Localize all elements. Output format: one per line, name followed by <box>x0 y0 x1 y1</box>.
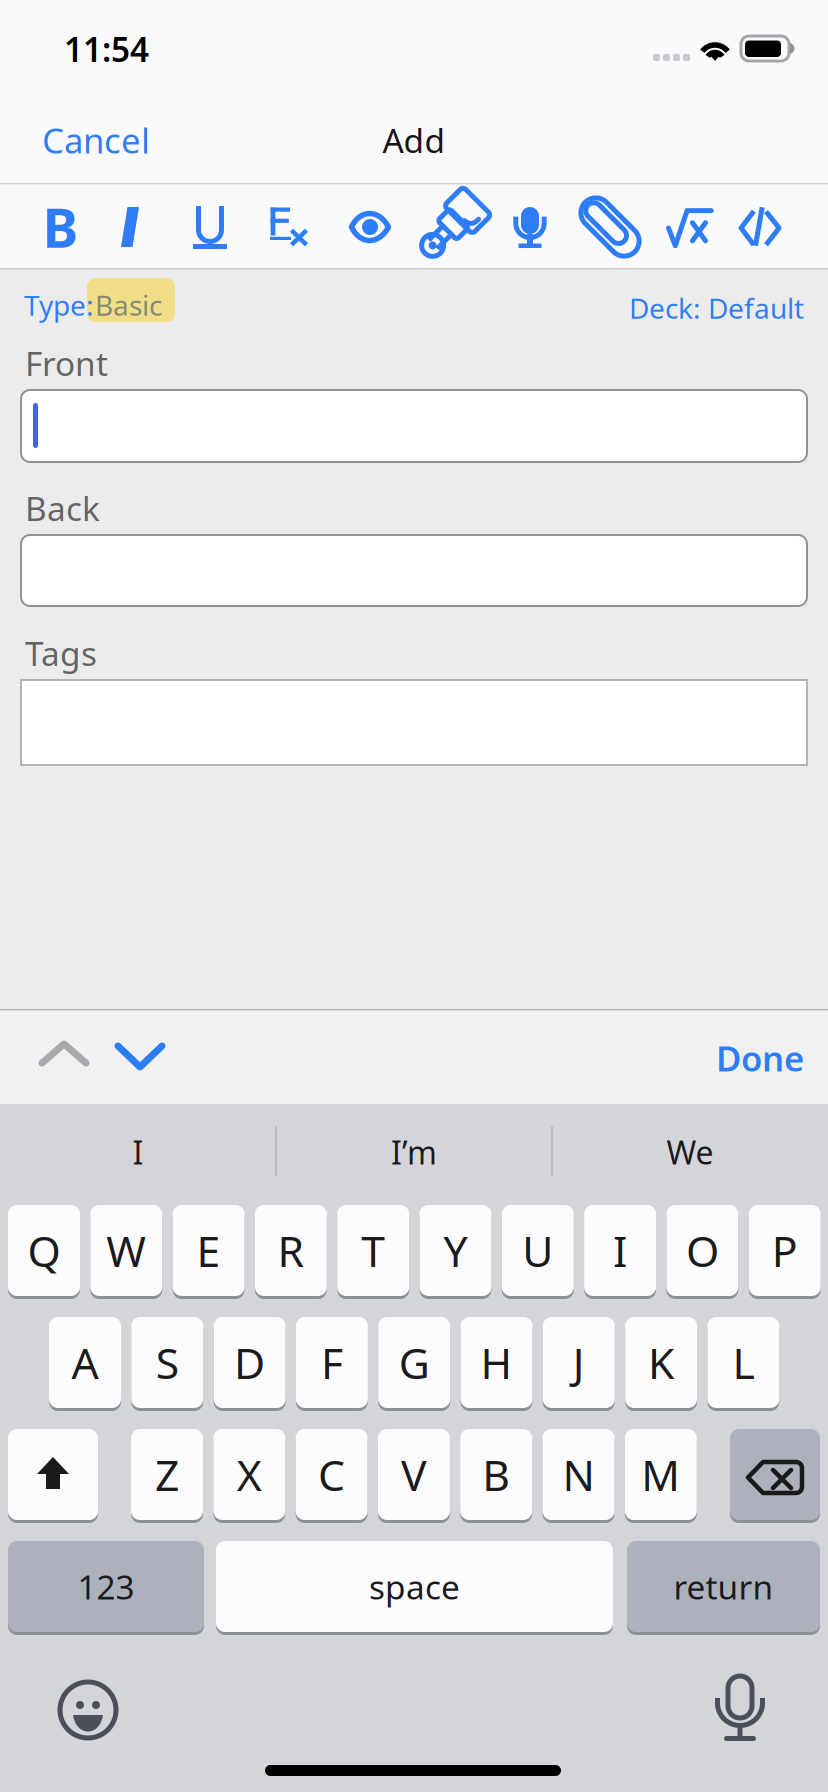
staticText: K <box>648 1334 674 1391</box>
staticText: 123 <box>77 1564 134 1609</box>
button[interactable]: S <box>131 1317 203 1411</box>
staticText: I <box>132 1131 143 1173</box>
staticText: J <box>573 1334 585 1391</box>
staticText: We <box>666 1131 713 1173</box>
button[interactable]: Y <box>419 1205 491 1299</box>
staticText: I <box>613 1222 627 1279</box>
staticText: M <box>641 1446 680 1503</box>
staticText: E <box>197 1222 221 1279</box>
button[interactable]: I <box>0 1118 276 1186</box>
button[interactable]: A <box>49 1317 121 1411</box>
staticText: L <box>732 1334 754 1391</box>
button[interactable]: Type: <box>24 277 184 323</box>
staticText: W <box>106 1222 146 1279</box>
staticText: A <box>71 1334 98 1391</box>
staticText: Add <box>382 118 445 162</box>
button[interactable]: Space <box>216 1541 613 1635</box>
staticText: Back <box>25 486 100 530</box>
staticText: Done <box>716 1035 804 1081</box>
button[interactable]: D <box>214 1317 286 1411</box>
button[interactable]: B <box>460 1429 532 1523</box>
staticText: return <box>673 1564 773 1609</box>
button[interactable]: W <box>90 1205 162 1299</box>
button[interactable]: Previous field <box>36 1032 92 1082</box>
button[interactable]: Bold <box>20 186 100 268</box>
button[interactable]: E <box>173 1205 245 1299</box>
button[interactable]: Preview <box>330 186 410 268</box>
staticText: O <box>686 1222 719 1279</box>
button[interactable]: O <box>666 1205 738 1299</box>
staticText: C <box>318 1446 345 1503</box>
button[interactable]: J <box>543 1317 615 1411</box>
button[interactable]: Underline <box>170 186 250 268</box>
button[interactable]: T <box>337 1205 409 1299</box>
staticText: R <box>277 1222 304 1279</box>
staticText: Y <box>443 1222 467 1279</box>
staticText: X <box>237 1446 262 1503</box>
staticText: Q <box>27 1222 60 1279</box>
button[interactable]: Italic <box>90 186 170 268</box>
staticText: N <box>562 1446 594 1503</box>
button[interactable]: We <box>552 1118 828 1186</box>
staticText: Basic <box>95 286 162 324</box>
staticText: D <box>234 1334 265 1391</box>
staticText: Type: <box>24 286 94 324</box>
button[interactable] <box>21 390 807 462</box>
staticText: F <box>321 1334 343 1391</box>
staticText: P <box>772 1222 798 1279</box>
button[interactable]: Edit HTML <box>722 186 802 268</box>
button[interactable]: U <box>502 1205 574 1299</box>
button[interactable]: Dictation <box>713 1676 767 1742</box>
staticText: space <box>369 1564 460 1609</box>
button[interactable]: I’m <box>276 1118 552 1186</box>
button[interactable]: MathJax <box>650 186 730 268</box>
button[interactable] <box>21 535 807 606</box>
staticText: H <box>480 1334 512 1391</box>
staticText: 11:54 <box>64 27 149 71</box>
button[interactable]: N <box>542 1429 614 1523</box>
staticText: S <box>156 1334 179 1391</box>
button[interactable]: L <box>707 1317 779 1411</box>
button[interactable] <box>21 680 807 765</box>
button[interactable]: Cancel <box>0 96 230 184</box>
button[interactable]: Q <box>8 1205 80 1299</box>
button[interactable]: Z <box>131 1429 203 1523</box>
staticText: Cancel <box>42 117 150 163</box>
staticText: Deck: Default <box>629 289 804 327</box>
button[interactable]: R <box>255 1205 327 1299</box>
button[interactable]: Done <box>636 1040 804 1076</box>
staticText: B <box>42 192 77 262</box>
button[interactable]: H <box>460 1317 532 1411</box>
button[interactable]: G <box>378 1317 450 1411</box>
button[interactable]: P <box>749 1205 821 1299</box>
staticText: T <box>361 1222 385 1279</box>
staticText: B <box>482 1446 510 1503</box>
button[interactable]: Deck: Default <box>483 293 804 323</box>
button[interactable]: Emoji <box>60 1682 116 1738</box>
staticText: I’m <box>391 1131 437 1173</box>
button[interactable]: K <box>625 1317 697 1411</box>
button[interactable]: Next field <box>112 1032 168 1082</box>
button[interactable]: M <box>625 1429 697 1523</box>
button[interactable]: Record audio <box>490 186 570 268</box>
staticText: G <box>399 1334 430 1391</box>
button[interactable]: Return <box>627 1541 820 1635</box>
staticText: U <box>522 1222 553 1279</box>
button[interactable]: C <box>296 1429 368 1523</box>
button[interactable]: Clear formatting <box>249 186 329 268</box>
button[interactable]: I <box>584 1205 656 1299</box>
button[interactable]: V <box>378 1429 450 1523</box>
button[interactable]: Numbers <box>8 1541 204 1635</box>
button[interactable]: Attach media <box>570 186 650 268</box>
staticText: Z <box>155 1446 179 1503</box>
button[interactable]: Delete <box>730 1429 820 1523</box>
staticText: V <box>401 1446 427 1503</box>
button[interactable]: Text colour <box>411 186 491 268</box>
staticText: Front <box>25 341 108 385</box>
staticText: Tags <box>25 631 97 675</box>
button[interactable]: F <box>296 1317 368 1411</box>
button[interactable]: Shift <box>8 1429 98 1523</box>
button[interactable]: X <box>213 1429 285 1523</box>
